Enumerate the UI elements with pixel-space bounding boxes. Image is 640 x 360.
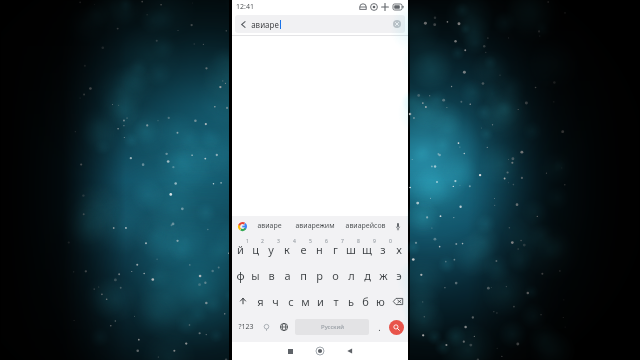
- staticText: т: [333, 294, 339, 309]
- staticText: з: [380, 242, 386, 257]
- staticText: авиаре: [257, 221, 282, 231]
- button[interactable]: п: [295, 262, 311, 288]
- button[interactable]: м: [298, 288, 313, 314]
- button[interactable]: ч: [268, 288, 283, 314]
- staticText: х: [396, 242, 402, 257]
- button[interactable]: р: [311, 262, 327, 288]
- button[interactable]: Search: [387, 318, 406, 337]
- staticText: ц: [252, 242, 259, 257]
- button[interactable]: Home: [305, 342, 335, 360]
- staticText: авиаре: [251, 19, 279, 30]
- button[interactable]: й: [233, 236, 248, 262]
- button[interactable]: а: [279, 262, 295, 288]
- staticText: в: [268, 268, 275, 283]
- button[interactable]: л: [343, 262, 359, 288]
- staticText: 4: [293, 238, 296, 245]
- button[interactable]: ц: [248, 236, 263, 262]
- button[interactable]: ы: [248, 262, 263, 288]
- staticText: п: [300, 268, 307, 283]
- staticText: е: [300, 242, 307, 257]
- staticText: 9: [373, 238, 376, 245]
- button[interactable]: Emoji: [258, 314, 275, 340]
- staticText: щ: [362, 242, 372, 257]
- staticText: 12:41: [236, 2, 254, 12]
- button[interactable]: е: [295, 236, 311, 262]
- button[interactable]: .: [372, 314, 387, 340]
- button[interactable]: с: [283, 288, 298, 314]
- button[interactable]: к: [279, 236, 295, 262]
- staticText: ?123: [238, 322, 254, 332]
- button[interactable]: з: [375, 236, 391, 262]
- button[interactable]: Back: [335, 342, 365, 360]
- staticText: 5: [309, 238, 312, 245]
- staticText: ю: [376, 294, 385, 309]
- staticText: б: [362, 294, 369, 309]
- staticText: ч: [272, 294, 279, 309]
- button[interactable]: Voice input: [391, 219, 405, 233]
- staticText: 0: [389, 238, 392, 245]
- button[interactable]: х: [391, 236, 407, 262]
- button[interactable]: ж: [375, 262, 391, 288]
- button[interactable]: о: [327, 262, 343, 288]
- button[interactable]: Clear: [389, 16, 405, 32]
- button[interactable]: ф: [233, 262, 248, 288]
- button[interactable]: авиаре: [249, 216, 289, 236]
- staticText: 1: [246, 238, 249, 245]
- button[interactable]: д: [359, 262, 375, 288]
- staticText: 2: [261, 238, 264, 245]
- button[interactable]: Backspace: [388, 288, 407, 314]
- button[interactable]: э: [391, 262, 407, 288]
- staticText: р: [316, 268, 323, 283]
- staticText: ж: [379, 268, 388, 283]
- staticText: 7: [341, 238, 344, 245]
- button[interactable]: авиарейсов: [340, 216, 391, 236]
- staticText: д: [364, 268, 371, 283]
- staticText: .: [378, 321, 381, 333]
- staticText: 8: [357, 238, 360, 245]
- staticText: 3: [277, 238, 280, 245]
- staticText: й: [237, 242, 244, 257]
- button[interactable]: н: [311, 236, 327, 262]
- button[interactable]: Recents: [275, 342, 305, 360]
- button[interactable]: ь: [343, 288, 358, 314]
- staticText: и: [317, 294, 324, 309]
- staticText: я: [257, 294, 264, 309]
- button[interactable]: ш: [343, 236, 359, 262]
- staticText: авиарежим: [295, 221, 335, 231]
- button[interactable]: я: [253, 288, 268, 314]
- button[interactable]: г: [327, 236, 343, 262]
- button[interactable]: Back: [235, 15, 405, 33]
- staticText: ф: [236, 268, 245, 283]
- staticText: ь: [348, 294, 354, 309]
- button[interactable]: Shift: [233, 288, 253, 314]
- button[interactable]: и: [313, 288, 328, 314]
- button[interactable]: в: [263, 262, 279, 288]
- staticText: авиарейсов: [345, 221, 386, 231]
- staticText: Русский: [321, 323, 344, 331]
- staticText: у: [268, 242, 274, 257]
- staticText: к: [284, 242, 290, 257]
- staticText: л: [348, 268, 355, 283]
- button[interactable]: б: [358, 288, 373, 314]
- staticText: н: [316, 242, 323, 257]
- button[interactable]: т: [328, 288, 343, 314]
- button[interactable]: авиарежим: [289, 216, 340, 236]
- button[interactable]: Google: [235, 219, 249, 233]
- staticText: ы: [251, 268, 260, 283]
- staticText: э: [396, 268, 402, 283]
- staticText: г: [333, 242, 338, 257]
- button[interactable]: у: [263, 236, 279, 262]
- button[interactable]: ю: [373, 288, 388, 314]
- button[interactable]: Change language: [275, 314, 292, 340]
- staticText: с: [288, 294, 294, 309]
- staticText: 6: [325, 238, 328, 245]
- staticText: о: [332, 268, 339, 283]
- button[interactable]: ?123: [234, 314, 258, 340]
- button[interactable]: Back: [235, 16, 251, 32]
- button[interactable]: Русский: [295, 319, 369, 335]
- button[interactable]: щ: [359, 236, 375, 262]
- staticText: а: [284, 268, 291, 283]
- staticText: ш: [346, 242, 356, 257]
- staticText: м: [301, 294, 310, 309]
